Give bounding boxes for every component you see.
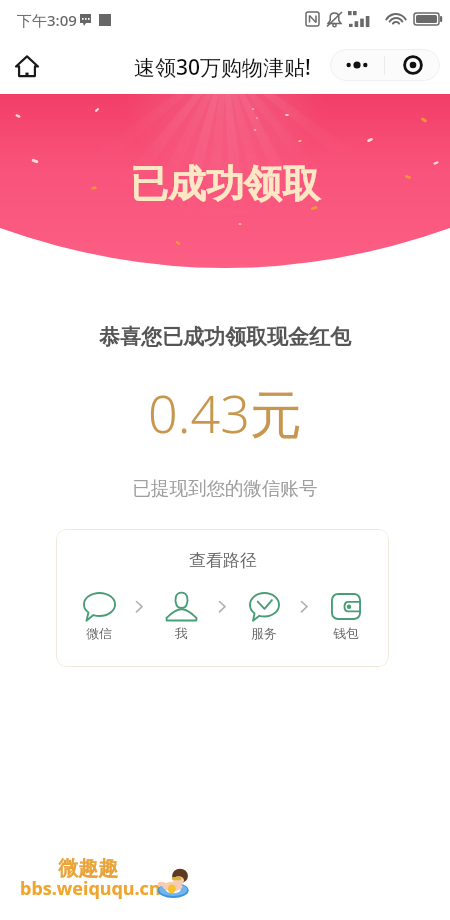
staticText: bbs.weiququ.cn xyxy=(19,877,160,902)
staticText: bbs.weiququ.cn xyxy=(19,875,160,900)
staticText: 钱包 xyxy=(333,625,359,641)
staticText: 下午3:09 xyxy=(17,10,77,30)
staticText: 微趣趣 xyxy=(58,856,118,881)
staticText: 已提现到您的微信账号 xyxy=(0,477,450,500)
staticText: 恭喜您已成功领取现金红包 xyxy=(0,324,450,350)
button[interactable]: 服务 xyxy=(241,589,287,641)
button[interactable]: 我 xyxy=(158,589,204,641)
staticText: 微趣趣 xyxy=(59,855,119,880)
staticText: 微趣趣 xyxy=(57,855,117,880)
staticText: 0.43元 xyxy=(0,377,450,448)
staticText: bbs.weiququ.cn xyxy=(21,877,162,902)
button[interactable]: 钱包 xyxy=(323,589,369,641)
staticText: bbs.weiququ.cn xyxy=(21,875,162,900)
staticText: 速领30万购物津贴! xyxy=(134,53,311,82)
staticText: 微信 xyxy=(86,625,112,641)
button[interactable]: More options xyxy=(330,49,384,81)
staticText: 服务 xyxy=(251,625,277,641)
staticText: bbs.weiququ.cn xyxy=(20,876,161,901)
staticText: 我 xyxy=(175,625,188,641)
staticText: 微趣趣 xyxy=(59,857,119,882)
staticText: 查看路径 xyxy=(189,550,257,571)
button[interactable]: Close xyxy=(385,49,440,81)
staticText: 微趣趣 xyxy=(57,857,117,882)
button[interactable]: Home xyxy=(9,48,45,84)
staticText: 已成功领取 xyxy=(130,160,320,208)
button[interactable]: 微信 xyxy=(76,589,122,641)
